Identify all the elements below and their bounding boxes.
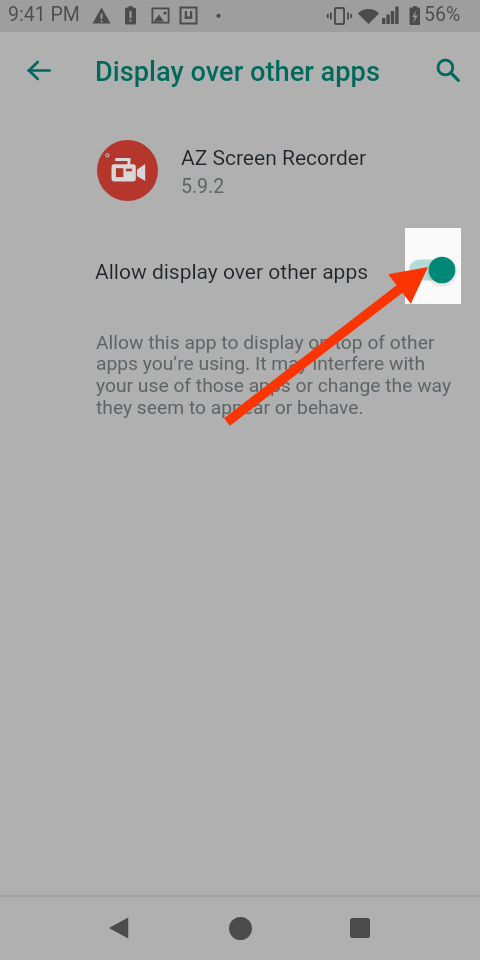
- button[interactable]: Recent apps: [336, 904, 384, 952]
- staticText: Allow this app to display on top of othe…: [96, 331, 460, 419]
- button[interactable]: Search: [424, 46, 472, 94]
- button[interactable]: Home: [216, 904, 264, 952]
- button[interactable]: Navigate up: [14, 46, 62, 94]
- staticText: Display over other apps: [95, 56, 380, 88]
- staticText: Allow display over other apps: [95, 260, 369, 285]
- button[interactable]: AZ Screen Recorder: [0, 134, 480, 206]
- staticText: 5.9.2: [181, 175, 225, 198]
- staticText: 9:41 PM: [8, 3, 80, 26]
- staticText: 56%: [424, 3, 461, 26]
- button[interactable]: Back: [95, 904, 143, 952]
- staticText: AZ Screen Recorder: [181, 146, 367, 171]
- button[interactable]: Allow display over other apps: [0, 230, 480, 306]
